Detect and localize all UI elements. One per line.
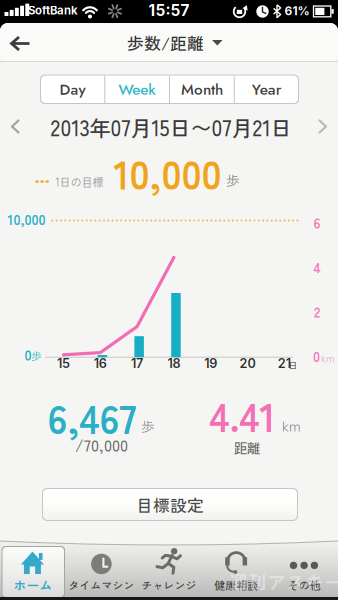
- staticText: 4.41: [209, 385, 275, 443]
- staticText: Week: [118, 78, 156, 100]
- button[interactable]: チャレンジ: [135, 544, 203, 600]
- staticText: 21: [278, 356, 291, 371]
- staticText: km: [282, 414, 301, 436]
- staticText: 15: [57, 356, 70, 371]
- staticText: 週刊アスキー: [229, 567, 338, 594]
- staticText: 19: [204, 356, 217, 371]
- staticText: 10,000: [7, 209, 45, 229]
- staticText: 0: [24, 344, 31, 365]
- staticText: 目標設定: [136, 492, 204, 516]
- staticText: Day: [59, 78, 85, 100]
- staticText: 15:57: [148, 1, 189, 20]
- button[interactable]: Back: [9, 36, 31, 50]
- button[interactable]: Year: [235, 75, 298, 104]
- staticText: SoftBank: [28, 4, 78, 17]
- staticText: 1日の目標: [55, 173, 103, 190]
- staticText: チャレンジ: [141, 577, 196, 592]
- staticText: 2: [314, 301, 320, 322]
- staticText: 2013年07月15日〜07月21日: [50, 112, 291, 142]
- staticText: 歩数/距離: [127, 30, 204, 54]
- staticText: 16: [94, 356, 107, 371]
- staticText: ホーム: [13, 575, 52, 594]
- staticText: 歩: [31, 348, 42, 363]
- staticText: Month: [181, 78, 223, 100]
- button[interactable]: 目標設定: [42, 488, 298, 521]
- staticText: 10,000: [113, 143, 221, 201]
- button[interactable]: タイムマシン: [68, 544, 135, 600]
- staticText: その他: [288, 577, 321, 592]
- button[interactable]: Month: [170, 75, 233, 104]
- staticText: 歩: [226, 170, 239, 190]
- staticText: 6: [313, 212, 320, 233]
- staticText: 4: [313, 257, 320, 277]
- staticText: 0: [313, 346, 320, 366]
- staticText: Year: [252, 78, 282, 100]
- staticText: タイムマシン: [68, 577, 134, 592]
- staticText: 17: [131, 356, 143, 371]
- button[interactable]: その他: [270, 544, 338, 600]
- staticText: km: [321, 350, 335, 365]
- button[interactable]: Next week: [317, 119, 328, 133]
- staticText: 61%: [284, 3, 309, 18]
- staticText: 歩: [141, 416, 154, 436]
- button[interactable]: Previous week: [10, 119, 21, 133]
- staticText: 18: [167, 356, 180, 371]
- button[interactable]: ホーム: [1, 546, 65, 598]
- staticText: 日: [288, 358, 297, 372]
- staticText: /70,000: [75, 433, 128, 456]
- staticText: 6,467: [47, 387, 136, 445]
- button[interactable]: Day: [41, 75, 104, 104]
- button[interactable]: Week: [106, 75, 169, 104]
- staticText: 健康相談: [215, 577, 259, 592]
- button[interactable]: 健康相談: [203, 544, 270, 600]
- staticText: 20: [239, 356, 255, 371]
- staticText: 距離: [234, 438, 260, 457]
- button[interactable]: 歩数/距離: [127, 30, 223, 54]
